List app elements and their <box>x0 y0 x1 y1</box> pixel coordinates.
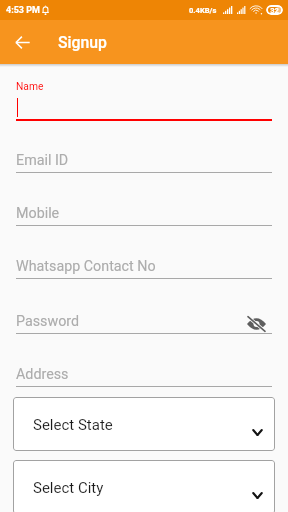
staticText: Mobile <box>16 205 60 222</box>
button[interactable]: Back <box>10 30 34 54</box>
staticText: Name <box>16 80 44 92</box>
staticText: Email ID <box>16 152 69 169</box>
staticText: Select City <box>33 479 104 497</box>
staticText: Address <box>16 366 69 383</box>
button[interactable]: Show password <box>245 313 267 335</box>
button[interactable]: Whatsapp Contact No <box>16 258 272 282</box>
button[interactable]: Mobile <box>16 205 272 229</box>
staticText: 32 <box>270 6 279 15</box>
button[interactable]: Address <box>16 366 272 390</box>
button[interactable]: Password <box>16 313 272 337</box>
staticText: Signup <box>58 33 107 52</box>
button[interactable]: Select City <box>13 460 275 512</box>
staticText: Password <box>16 313 80 330</box>
staticText: Whatsapp Contact No <box>16 258 156 275</box>
button[interactable]: Email ID <box>16 152 272 176</box>
staticText: 0.4KB/s <box>189 6 217 15</box>
staticText: Select State <box>33 416 113 434</box>
staticText: 4:53 PM <box>6 5 40 16</box>
button[interactable]: Name <box>16 80 272 122</box>
button[interactable]: Select State <box>13 397 275 451</box>
